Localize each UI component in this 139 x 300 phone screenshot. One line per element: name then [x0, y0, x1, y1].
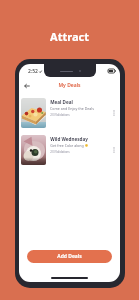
staticText: Attract [50, 29, 89, 43]
button[interactable]: Meal Deal [19, 94, 120, 131]
staticText: Meal Deal [50, 99, 73, 105]
staticText: 2/3 Validations [50, 113, 70, 117]
staticText: Come and Enjoy the Deals [50, 106, 94, 111]
staticText: Get free Coke along [50, 143, 84, 148]
staticText: 2/3 Validations [50, 150, 70, 154]
button[interactable]: More options [109, 108, 118, 117]
button[interactable]: Add Deals [27, 250, 112, 263]
button[interactable]: Wild Wednesday [19, 131, 120, 168]
staticText: Add Deals [57, 253, 82, 260]
staticText: Wild Wednesday [50, 136, 88, 142]
button[interactable]: Back [22, 81, 32, 91]
staticText: 2:52 [28, 68, 38, 75]
button[interactable]: More options [109, 145, 118, 154]
staticText: My Deals [58, 82, 81, 89]
